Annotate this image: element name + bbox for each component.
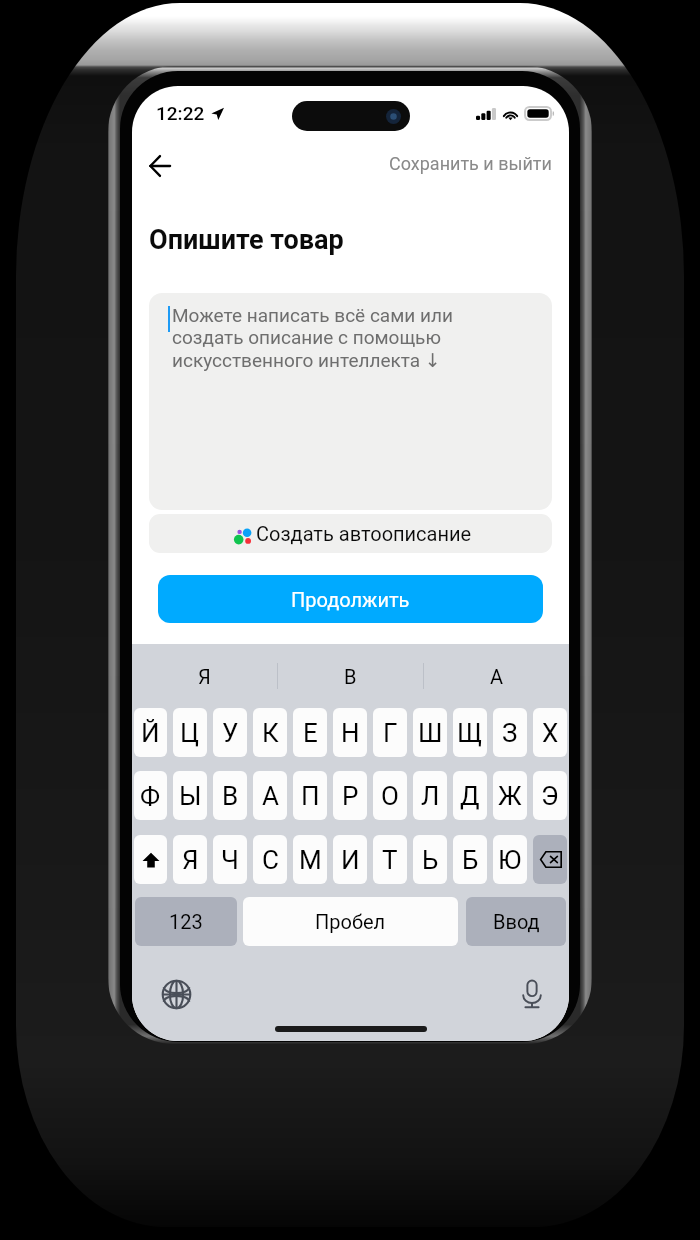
staticText: Е [303,718,318,748]
staticText: Щ [457,718,483,748]
button[interactable]: В [213,771,247,820]
staticText: И [341,845,360,875]
button[interactable]: Д [453,771,487,820]
button[interactable]: Х [533,708,567,757]
button[interactable]: Сменить язык [159,977,193,1011]
button[interactable]: Ы [173,771,207,820]
button[interactable]: Ж [493,771,527,820]
staticText: Ж [498,781,522,811]
button[interactable]: И [333,835,367,884]
staticText: Х [542,718,559,748]
button[interactable]: Ю [493,835,527,884]
staticText: Сохранить и выйти [389,153,552,174]
staticText: Я [182,845,199,875]
staticText: Ввод [493,910,540,933]
staticText: Ю [498,845,522,875]
staticText: Н [341,718,360,748]
button[interactable]: Н [333,708,367,757]
staticText: М [299,845,322,875]
staticText: Я [198,665,211,688]
staticText: Ц [180,718,200,748]
button[interactable]: К [253,708,287,757]
staticText: С [262,845,279,875]
staticText: Т [382,845,398,875]
staticText: А [262,781,279,811]
button[interactable]: А [253,771,287,820]
button[interactable]: Е [293,708,327,757]
staticText: О [381,781,399,811]
button[interactable]: О [373,771,407,820]
staticText: Ш [418,718,443,748]
staticText: Создать автоописание [256,522,472,545]
staticText: 123 [169,910,203,933]
button[interactable]: Ц [173,708,207,757]
button[interactable]: Л [413,771,447,820]
button[interactable]: З [493,708,527,757]
staticText: Б [462,845,479,875]
button[interactable]: Назад [137,143,183,189]
button[interactable]: М [293,835,327,884]
button[interactable]: Ь [413,835,447,884]
button[interactable]: П [293,771,327,820]
button[interactable]: Пробел [243,897,458,946]
staticText: К [262,718,279,748]
staticText: В [344,665,357,688]
button[interactable]: А [424,644,569,708]
button[interactable]: Продолжить [158,575,543,623]
button[interactable]: Ш [413,708,447,757]
staticText: Опишите товар [149,224,344,256]
button[interactable]: Диктовка [515,977,549,1011]
staticText: Э [541,781,559,811]
staticText: А [490,665,504,688]
button[interactable]: Ф [134,771,167,820]
staticText: Ь [422,845,439,875]
button[interactable]: В [278,644,423,708]
button[interactable]: Я [173,835,207,884]
button[interactable]: Удалить [533,835,567,884]
button[interactable]: Б [453,835,487,884]
staticText: Р [342,781,359,811]
staticText: Продолжить [291,588,410,611]
button[interactable]: Создать автоописание [149,514,552,553]
staticText: В [222,781,239,811]
button[interactable]: Р [333,771,367,820]
staticText: Й [141,718,160,748]
staticText: Г [383,718,398,748]
button[interactable]: Сохранить и выйти [381,147,560,180]
button[interactable]: Й [134,708,167,757]
button[interactable]: С [253,835,287,884]
staticText: Ы [179,781,202,811]
button[interactable]: У [213,708,247,757]
button[interactable]: Г [373,708,407,757]
button[interactable]: 123 [135,897,237,946]
staticText: 12:22 [156,102,205,124]
staticText: Ч [221,845,239,875]
button[interactable]: Т [373,835,407,884]
button[interactable]: Э [533,771,567,820]
staticText: Пробел [315,910,386,933]
staticText: Л [421,781,440,811]
button[interactable]: Ввод [466,897,566,946]
staticText: Ф [140,781,161,811]
staticText: Д [460,781,480,811]
staticText: П [301,781,320,811]
staticText: З [502,718,518,748]
button[interactable]: Можете написать всё сами или создать опи… [149,293,552,510]
button[interactable]: Ч [213,835,247,884]
button[interactable]: Shift [134,835,167,884]
button[interactable]: Щ [453,708,487,757]
button[interactable]: Я [132,644,277,708]
staticText: У [222,718,239,748]
staticText: Можете написать всё сами или создать опи… [172,304,453,372]
